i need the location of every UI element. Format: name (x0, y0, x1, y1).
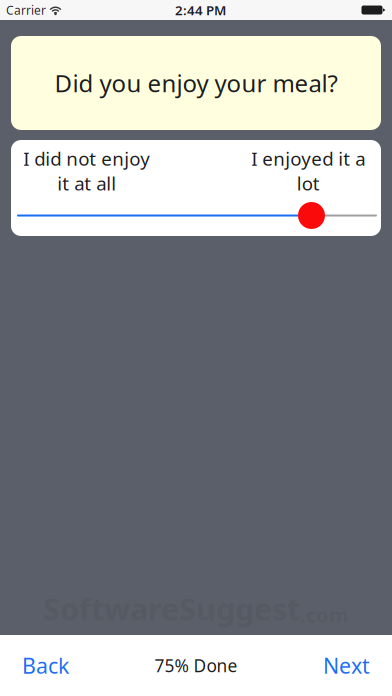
staticText: I did not enjoy it at all (23, 146, 150, 196)
staticText: 2:44 PM (175, 1, 226, 19)
staticText: 75% Done (154, 654, 237, 677)
staticText: I enjoyed it a lot (251, 146, 365, 196)
staticText: Back (22, 651, 69, 680)
button[interactable]: Back (8, 639, 83, 692)
button[interactable]: Next (309, 639, 384, 692)
button[interactable]: Rating slider (298, 202, 325, 229)
staticText: Next (323, 651, 370, 680)
staticText: Carrier (6, 2, 46, 18)
staticText: Did you enjoy your meal? (54, 67, 337, 99)
